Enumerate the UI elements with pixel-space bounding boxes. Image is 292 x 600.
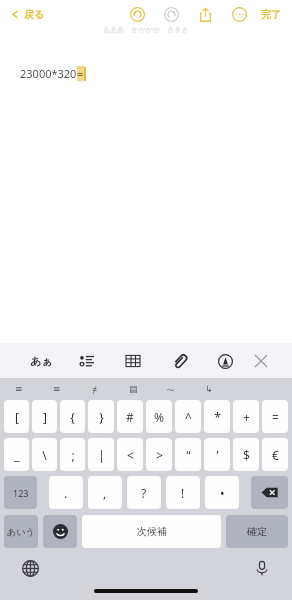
- button[interactable]: [: [4, 400, 29, 433]
- button[interactable]: ≡: [38, 378, 76, 400]
- button[interactable]: }: [88, 400, 114, 433]
- button[interactable]: .: [49, 476, 83, 509]
- staticText: +: [243, 409, 250, 425]
- button[interactable]: {: [60, 400, 85, 433]
- button[interactable]: あぁ: [26, 346, 56, 376]
- button[interactable]: ≡: [0, 378, 38, 400]
- button[interactable]: Share: [194, 3, 216, 25]
- button[interactable]: %: [146, 400, 172, 433]
- button[interactable]: “: [175, 438, 201, 471]
- button[interactable]: 戻る: [8, 4, 48, 25]
- button[interactable]: More options: [228, 3, 250, 25]
- button[interactable]: Backspace: [251, 476, 288, 509]
- staticText: !: [181, 485, 185, 501]
- staticText: ↳: [205, 384, 213, 394]
- button[interactable]: Draw: [210, 346, 240, 376]
- staticText: {: [70, 409, 75, 425]
- button[interactable]: ;: [60, 438, 85, 471]
- button[interactable]: #: [117, 400, 143, 433]
- staticText: ;: [71, 447, 75, 463]
- staticText: >: [156, 447, 163, 463]
- staticText: あああ かかかか ききき: [103, 25, 189, 35]
- button[interactable]: •: [205, 476, 239, 509]
- staticText: あいう: [7, 526, 35, 537]
- staticText: _: [14, 447, 20, 463]
- staticText: ⁓: [166, 383, 176, 395]
- staticText: *: [214, 409, 221, 425]
- staticText: =: [272, 409, 279, 425]
- button[interactable]: ▤: [114, 378, 152, 400]
- staticText: 123: [13, 487, 29, 499]
- staticText: “: [186, 447, 191, 463]
- staticText: あぁ: [30, 354, 53, 368]
- button[interactable]: <: [117, 438, 143, 471]
- staticText: .: [64, 485, 68, 501]
- staticText: ]: [43, 409, 47, 425]
- button[interactable]: ]: [32, 400, 57, 433]
- button[interactable]: 次候補: [82, 515, 221, 548]
- staticText: =: [77, 66, 84, 81]
- staticText: ≡: [53, 384, 61, 394]
- staticText: %: [154, 409, 164, 425]
- staticText: 確定: [247, 525, 267, 538]
- button[interactable]: List: [72, 346, 102, 376]
- button[interactable]: 123: [4, 476, 37, 509]
- staticText: \: [42, 447, 47, 463]
- button[interactable]: Table: [118, 346, 148, 376]
- staticText: ^: [185, 409, 192, 425]
- button[interactable]: Attach: [164, 346, 194, 376]
- button[interactable]: Change keyboard: [18, 556, 42, 580]
- staticText: }: [99, 409, 104, 425]
- button[interactable]: Redo: [160, 3, 182, 25]
- staticText: <: [127, 447, 134, 463]
- button[interactable]: €: [262, 438, 288, 471]
- staticText: 完了: [261, 8, 281, 21]
- button[interactable]: Emoji: [43, 515, 77, 548]
- staticText: $: [243, 447, 250, 463]
- staticText: €: [272, 447, 279, 463]
- button[interactable]: ,: [88, 476, 122, 509]
- button[interactable]: ⁓: [152, 378, 190, 400]
- button[interactable]: ?: [127, 476, 161, 509]
- staticText: 次候補: [137, 525, 167, 538]
- button[interactable]: ↳: [190, 378, 228, 400]
- staticText: 23000*320: [20, 66, 77, 81]
- button[interactable]: >: [146, 438, 172, 471]
- button[interactable]: !: [166, 476, 200, 509]
- button[interactable]: ’: [204, 438, 230, 471]
- button[interactable]: $: [233, 438, 259, 471]
- button[interactable]: =: [262, 400, 288, 433]
- staticText: ≡: [15, 384, 23, 394]
- staticText: •: [220, 485, 225, 501]
- staticText: ▤: [129, 384, 138, 394]
- staticText: 戻る: [24, 8, 45, 21]
- button[interactable]: \: [32, 438, 57, 471]
- button[interactable]: ≠: [76, 378, 114, 400]
- staticText: ’: [216, 447, 219, 463]
- staticText: ≠: [92, 383, 98, 395]
- button[interactable]: |: [88, 438, 114, 471]
- button[interactable]: 完了: [258, 4, 284, 25]
- staticText: [: [15, 409, 19, 425]
- staticText: #: [126, 409, 134, 425]
- staticText: ,: [103, 485, 107, 501]
- button[interactable]: Close keyboard: [246, 346, 276, 376]
- button[interactable]: ^: [175, 400, 201, 433]
- button[interactable]: Undo: [126, 3, 148, 25]
- button[interactable]: _: [4, 438, 29, 471]
- button[interactable]: Voice input: [250, 556, 274, 580]
- staticText: ?: [141, 485, 147, 501]
- button[interactable]: 確定: [226, 515, 288, 548]
- staticText: |: [98, 447, 105, 463]
- button[interactable]: +: [233, 400, 259, 433]
- button[interactable]: あいう: [4, 515, 38, 548]
- button[interactable]: *: [204, 400, 230, 433]
